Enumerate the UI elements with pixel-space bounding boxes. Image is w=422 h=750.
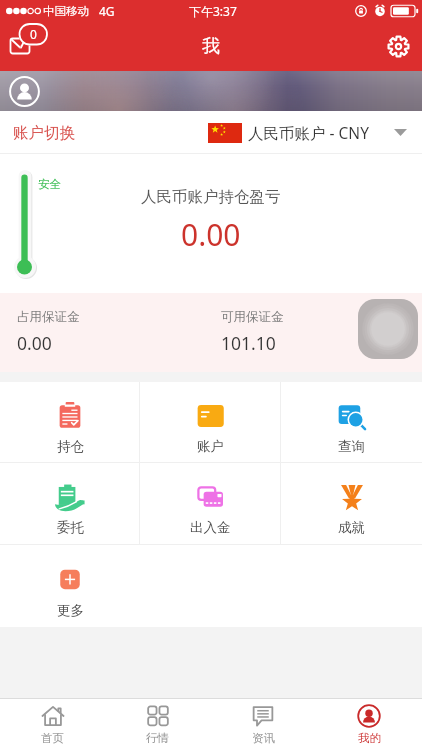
button[interactable]: 我的: [316, 699, 422, 750]
button[interactable]: 更多: [0, 545, 140, 627]
staticText: 人民币账户 - CNY: [248, 122, 369, 143]
staticText: 101.10: [221, 331, 276, 355]
button[interactable]: 查询: [281, 382, 422, 462]
staticText: 人民币账户持仓盈亏: [141, 187, 281, 207]
button[interactable]: 账户: [140, 382, 281, 462]
staticText: 行情: [146, 731, 169, 745]
button[interactable]: 持仓: [0, 382, 140, 462]
button[interactable]: 出入金: [140, 463, 281, 544]
staticText: 账户: [197, 438, 224, 455]
staticText: 资讯: [252, 731, 275, 745]
button[interactable]: 委托: [0, 463, 140, 544]
staticText: 首页: [41, 731, 64, 745]
staticText: 持仓: [57, 438, 84, 455]
staticText: 0: [30, 26, 37, 42]
staticText: 查询: [338, 438, 365, 455]
staticText: 委托: [57, 519, 84, 536]
staticText: 0.00: [17, 331, 52, 355]
staticText: 0.00: [181, 214, 241, 255]
button[interactable]: 账户切换: [0, 111, 422, 154]
button[interactable]: 首页: [0, 699, 105, 750]
staticText: 中国移动: [43, 4, 89, 18]
button[interactable]: 成就: [281, 463, 422, 544]
staticText: 下午3:37: [189, 3, 237, 19]
button[interactable]: Profile: [9, 76, 40, 107]
staticText: 可用保证金: [221, 309, 284, 325]
staticText: 我: [202, 35, 220, 58]
staticText: 出入金: [190, 519, 231, 536]
staticText: 占用保证金: [17, 309, 80, 325]
button[interactable]: Settings: [374, 22, 422, 71]
button[interactable]: 行情: [105, 699, 210, 750]
staticText: 4G: [99, 3, 115, 19]
staticText: 账户切换: [13, 123, 75, 143]
staticText: 更多: [57, 602, 84, 619]
staticText: 安全: [38, 177, 61, 191]
button[interactable]: 资讯: [210, 699, 316, 750]
staticText: 成就: [338, 519, 365, 536]
staticText: 我的: [358, 731, 381, 745]
button[interactable]: Account action: [358, 299, 418, 359]
button[interactable]: Messages: [0, 22, 54, 71]
